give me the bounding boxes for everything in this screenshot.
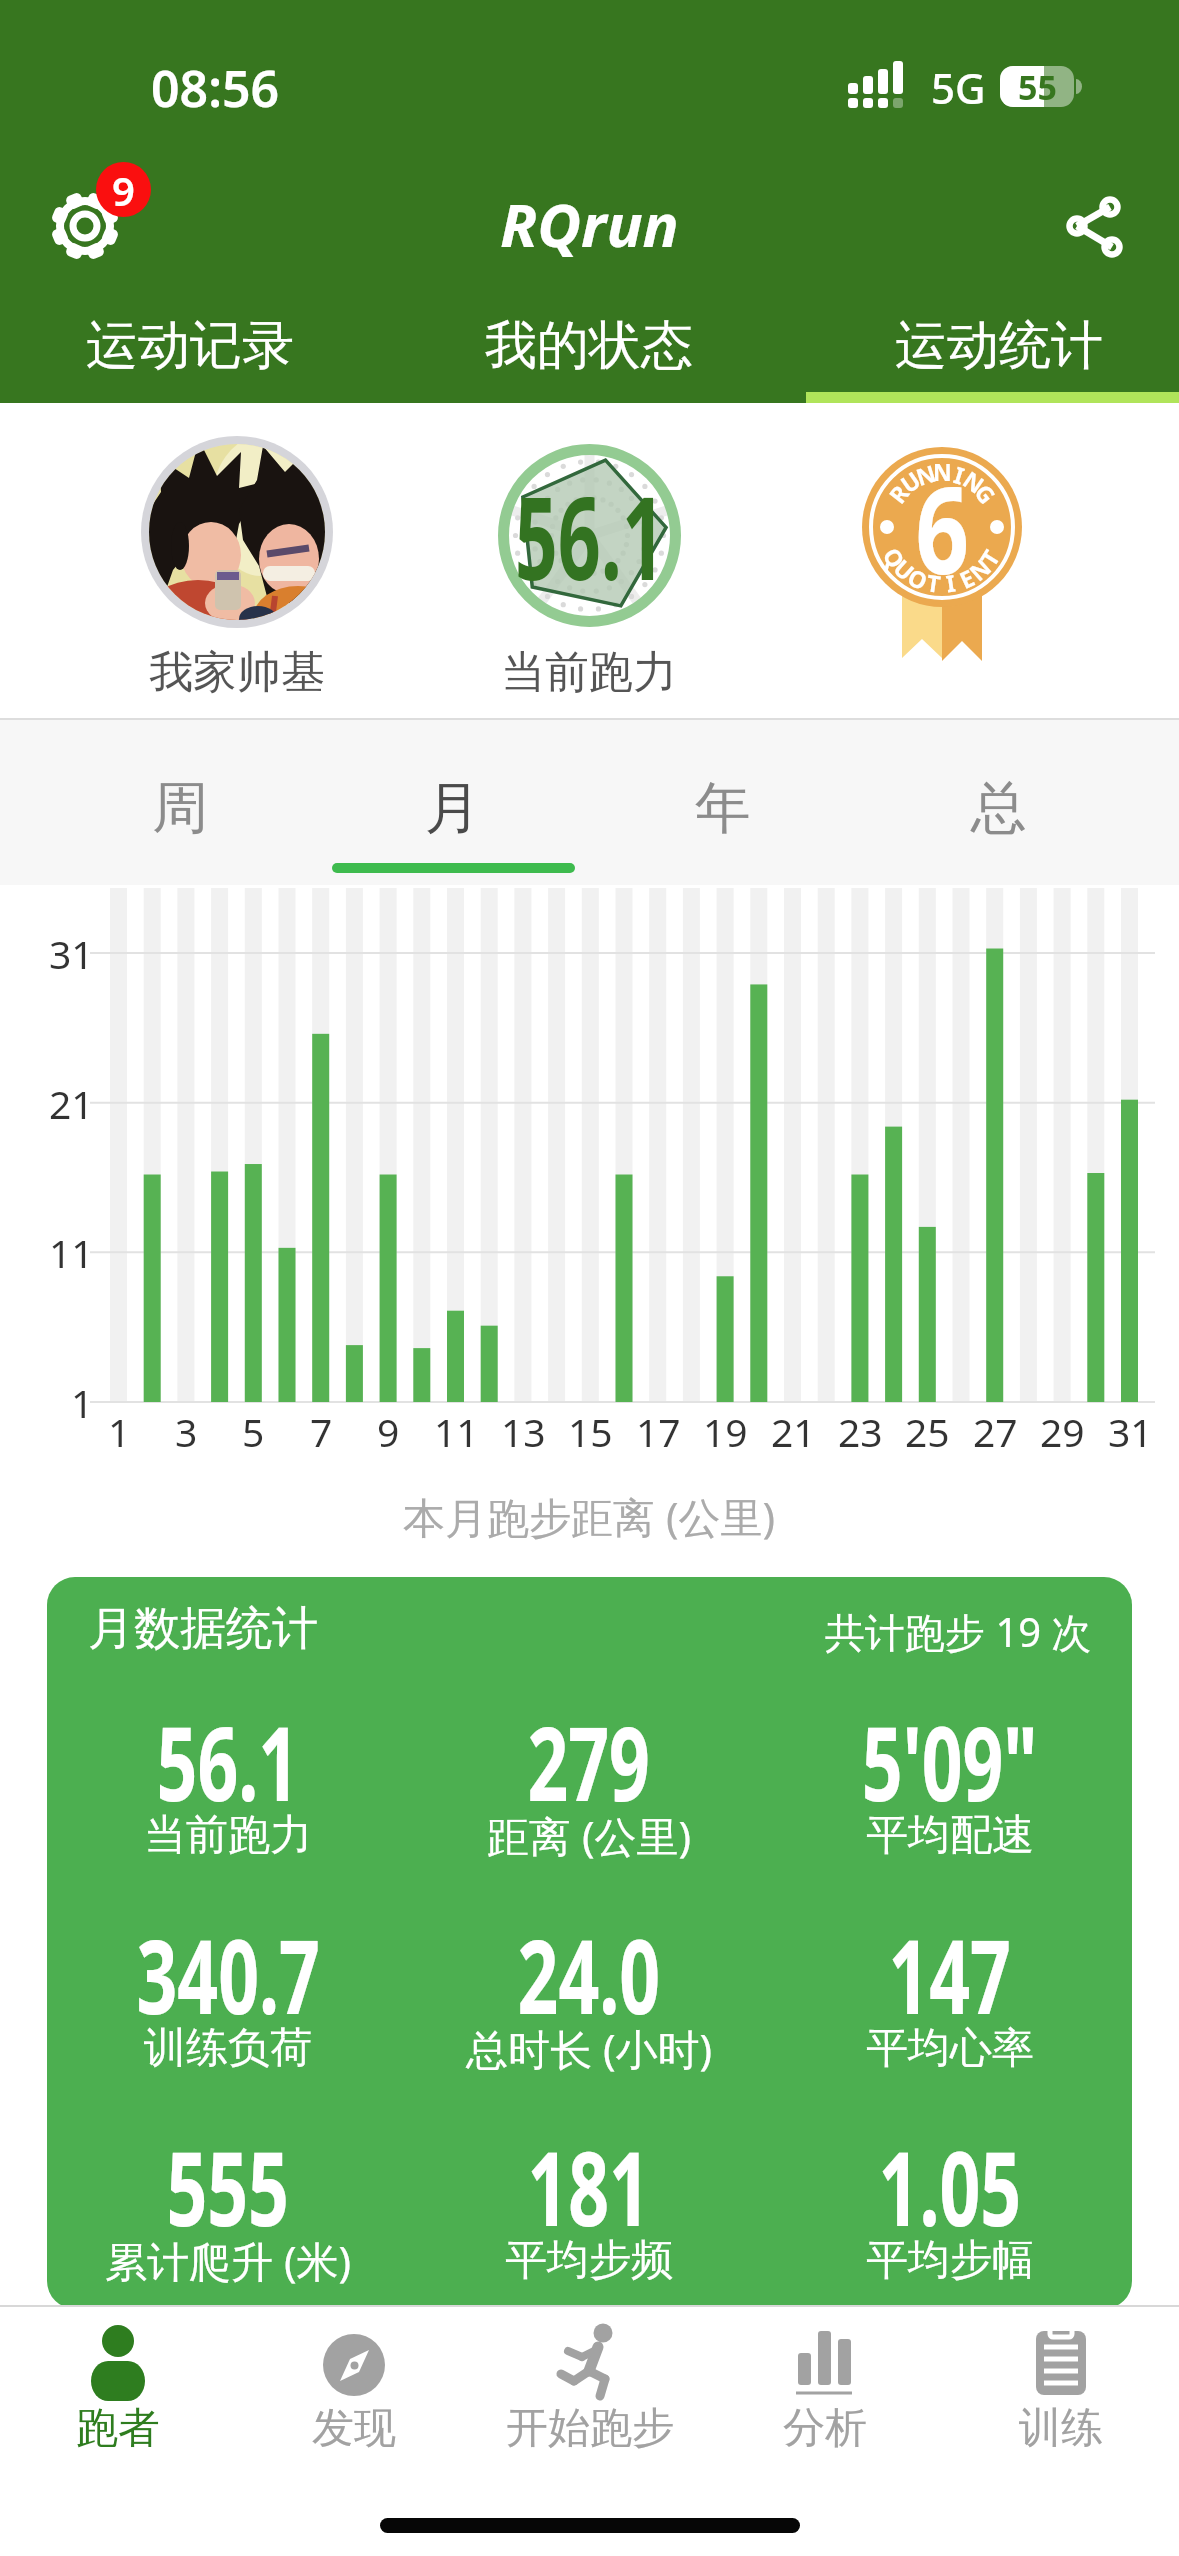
staticText: N (933, 456, 952, 486)
button[interactable]: 9 (40, 150, 170, 280)
staticText: 27 (973, 1405, 1018, 1458)
staticText: 21 (49, 1077, 94, 1130)
staticText: 56.1 (157, 1692, 299, 1812)
staticText: U (888, 552, 922, 586)
staticText: 08:56 (151, 54, 280, 122)
staticText: 月数据统计 (88, 1600, 318, 1658)
staticText: 累计爬升 (米) (105, 2232, 352, 2289)
button[interactable]: 年 (623, 748, 823, 868)
staticText: 月 (425, 773, 481, 844)
staticText: 6 (916, 446, 969, 609)
staticText: 19 (703, 1405, 748, 1458)
staticText: 340.7 (136, 1905, 321, 2025)
staticText: 5 (242, 1405, 265, 1458)
staticText: 11 (434, 1405, 479, 1458)
staticText: 1 (71, 1376, 94, 1429)
staticText: N (962, 551, 996, 586)
button[interactable]: 运动统计 (819, 300, 1179, 392)
staticText: N (912, 457, 939, 491)
staticText: 56.1 (515, 458, 665, 613)
staticText: 我的状态 (485, 313, 693, 379)
staticText: 1 (108, 1405, 131, 1458)
staticText: T (925, 566, 943, 598)
button[interactable]: 开始跑步 (480, 2313, 700, 2473)
staticText: 3 (175, 1405, 198, 1458)
staticText: 运动统计 (895, 313, 1103, 379)
button[interactable]: 月数据统计 (47, 1577, 1132, 2309)
staticText: G (969, 477, 1003, 509)
staticText: R (881, 477, 915, 509)
staticText: 当前跑力 (144, 1809, 312, 1862)
staticText: 总 (971, 773, 1027, 844)
staticText: Q (877, 541, 913, 573)
staticText: 5G (931, 59, 986, 116)
staticText: O (903, 561, 933, 596)
staticText: 平均步频 (505, 2234, 673, 2287)
staticText: 13 (501, 1405, 546, 1458)
staticText: 开始跑步 (506, 2402, 674, 2455)
staticText: U (894, 463, 926, 498)
button[interactable]: 总 (899, 748, 1099, 868)
button[interactable]: 跑者 (8, 2313, 228, 2473)
staticText: 平均步幅 (866, 2234, 1034, 2287)
staticText: E (954, 561, 979, 594)
staticText: 5'09" (862, 1692, 1038, 1812)
staticText: 11 (49, 1226, 94, 1279)
staticText: 31 (1108, 1405, 1153, 1458)
staticText: 21 (771, 1405, 816, 1458)
staticText: 平均心率 (866, 2022, 1034, 2075)
staticText: 181 (527, 2117, 651, 2237)
staticText: 我家帅基 (149, 645, 325, 700)
button[interactable]: 发现 (244, 2313, 464, 2473)
staticText: 平均配速 (866, 1809, 1034, 1862)
staticText: 运动记录 (86, 313, 294, 379)
button[interactable] (1040, 176, 1140, 276)
staticText: 总时长 (小时) (466, 2020, 713, 2077)
staticText: 279 (527, 1692, 651, 1812)
staticText: 23 (838, 1405, 883, 1458)
staticText: T (973, 543, 1005, 571)
staticText: 25 (905, 1405, 950, 1458)
staticText: 当前跑力 (501, 645, 677, 700)
staticText: 训练负荷 (144, 2022, 312, 2075)
staticText: 17 (636, 1405, 681, 1458)
button[interactable]: 分析 (715, 2313, 935, 2473)
staticText: N (958, 463, 991, 499)
staticText: 7 (310, 1405, 333, 1458)
staticText: 9 (377, 1405, 400, 1458)
staticText: 9 (112, 163, 135, 217)
button[interactable]: 我的状态 (409, 300, 769, 392)
button[interactable]: 月 (353, 748, 553, 868)
staticText: 555 (166, 2117, 290, 2237)
button[interactable] (141, 436, 333, 628)
staticText: 跑者 (76, 2402, 160, 2455)
staticText: 24.0 (518, 1905, 660, 2025)
staticText: 31 (49, 927, 94, 980)
staticText: 发现 (312, 2402, 396, 2455)
button[interactable]: 6 (860, 443, 1026, 663)
staticText: 147 (888, 1905, 1012, 2025)
button[interactable]: 56.1 (498, 444, 681, 627)
staticText: 29 (1040, 1405, 1085, 1458)
staticText: 训练 (1019, 2402, 1103, 2455)
staticText: 共计跑步 19 次 (825, 1604, 1092, 1656)
button[interactable]: 周 (80, 748, 280, 868)
staticText: 本月跑步距离 (公里) (403, 1488, 776, 1545)
staticText: 周 (152, 773, 208, 844)
button[interactable]: 训练 (951, 2313, 1171, 2473)
staticText: 分析 (783, 2402, 867, 2455)
staticText: I (951, 458, 968, 490)
staticText: 1.05 (879, 2117, 1021, 2237)
button[interactable]: 运动记录 (10, 300, 370, 392)
staticText: 年 (695, 773, 751, 844)
staticText: RQrun (500, 183, 679, 265)
staticText: 距离 (公里) (487, 1807, 692, 1864)
staticText: 55 (1018, 64, 1057, 110)
staticText: 15 (568, 1405, 613, 1458)
staticText: I (944, 566, 957, 597)
